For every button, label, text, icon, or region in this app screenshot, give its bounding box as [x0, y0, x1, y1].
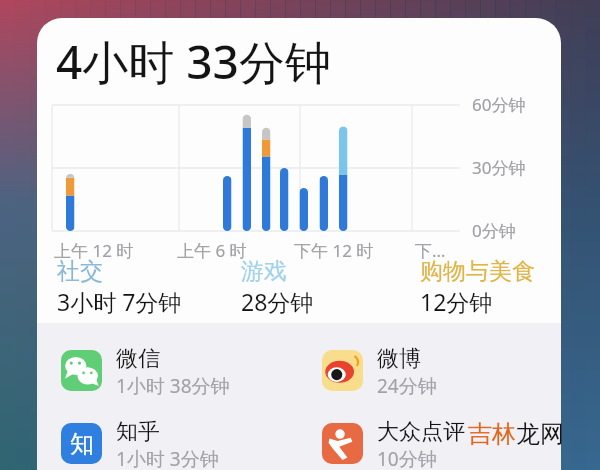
- staticText: 社交: [57, 257, 103, 286]
- staticText: 30分钟: [472, 156, 526, 179]
- staticText: 微博: [377, 345, 421, 373]
- staticText: 知乎: [116, 418, 160, 446]
- button[interactable]: 微信: [61, 345, 281, 395]
- staticText: 上午 12 时: [54, 239, 134, 262]
- staticText: 24分钟: [377, 373, 437, 395]
- staticText: 上午 6 时: [177, 239, 247, 262]
- button[interactable]: 知: [61, 418, 281, 468]
- button[interactable]: 购物与美食: [420, 257, 535, 317]
- staticText: 3小时 7分钟: [57, 286, 182, 317]
- staticText: 下…: [415, 239, 446, 262]
- staticText: 购物与美食: [420, 257, 535, 286]
- staticText: 28分钟: [241, 286, 314, 317]
- staticText: 1小时 38分钟: [116, 373, 230, 395]
- staticText: 1小时 3分钟: [116, 446, 219, 468]
- staticText: 大众点评: [377, 418, 465, 446]
- button[interactable]: 微博: [322, 345, 542, 395]
- staticText: 0分钟: [472, 219, 516, 242]
- button[interactable]: 大众点评: [322, 418, 542, 468]
- staticText: 知: [70, 429, 94, 459]
- staticText: 60分钟: [472, 93, 526, 116]
- staticText: 龙网: [516, 419, 564, 449]
- staticText: 下午 12 时: [294, 239, 374, 262]
- button[interactable]: 游戏: [241, 257, 314, 317]
- staticText: 12分钟: [420, 286, 493, 317]
- staticText: 4小时 33分钟: [56, 30, 331, 93]
- staticText: 游戏: [241, 257, 287, 286]
- staticText: 10分钟: [377, 446, 437, 468]
- button[interactable]: 社交: [57, 257, 182, 317]
- staticText: 微信: [116, 345, 160, 373]
- staticText: 吉林: [468, 419, 516, 449]
